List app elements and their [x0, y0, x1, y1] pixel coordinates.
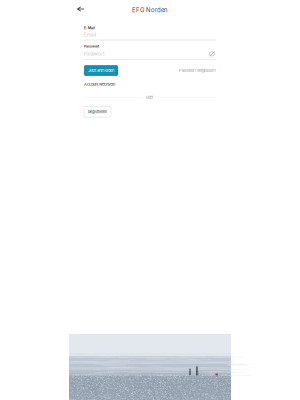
staticText: Passwort: [84, 44, 99, 48]
button[interactable]: Jetzt anmelden: [84, 65, 118, 76]
staticText: EFG Norden: [132, 6, 168, 14]
staticText: Passwort vergessen?: [179, 68, 216, 73]
staticText: Account wechseln: [84, 82, 115, 87]
staticText: Email: [84, 32, 96, 38]
staticText: Passwort: [84, 51, 105, 57]
button[interactable]: Show password: [208, 50, 216, 57]
button[interactable]: Back: [72, 1, 89, 16]
staticText: E-Mail: [84, 26, 95, 30]
button[interactable]: Passwort vergessen?: [179, 68, 216, 73]
button[interactable]: Registrieren: [84, 107, 111, 117]
staticText: Registrieren: [88, 110, 107, 114]
button[interactable]: Account wechseln: [84, 82, 115, 87]
staticText: Jetzt anmelden: [88, 68, 114, 73]
staticText: oder: [146, 95, 154, 100]
